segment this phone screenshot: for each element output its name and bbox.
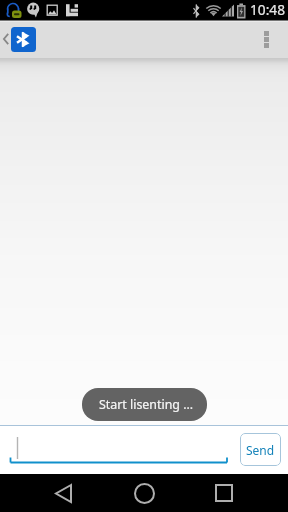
button[interactable]: More options bbox=[244, 22, 288, 58]
button[interactable]: Bluetooth chat app icon bbox=[11, 27, 36, 52]
button[interactable]: Send bbox=[240, 433, 281, 466]
button[interactable]: Start lisenting ... bbox=[82, 388, 207, 421]
button[interactable]: Back bbox=[43, 474, 83, 512]
button[interactable]: Recent apps bbox=[204, 474, 244, 512]
staticText: Send bbox=[246, 442, 275, 458]
button[interactable]: Navigate up bbox=[0, 22, 11, 58]
button[interactable]: Message input field bbox=[4, 426, 232, 474]
staticText: 10:48 bbox=[250, 0, 285, 19]
staticText: Start lisenting ... bbox=[99, 396, 194, 413]
button[interactable]: Home bbox=[124, 474, 164, 512]
